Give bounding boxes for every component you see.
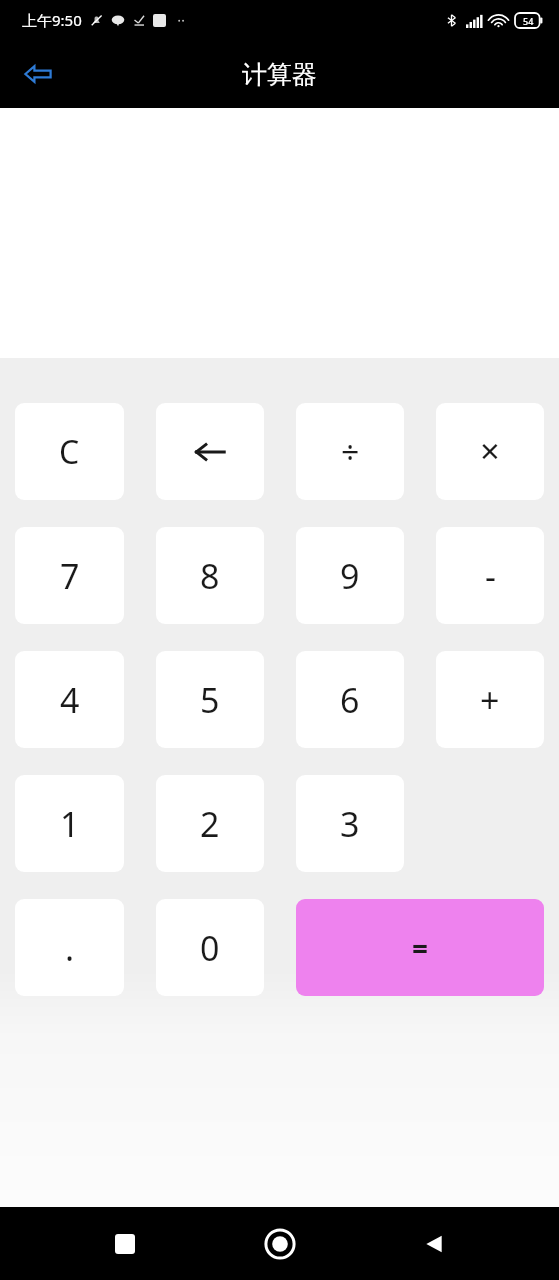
- staticText: ÷: [341, 430, 360, 474]
- button[interactable]: Recents: [95, 1214, 155, 1274]
- button[interactable]: 8: [156, 527, 264, 624]
- button[interactable]: Backspace: [156, 403, 264, 500]
- button[interactable]: 3: [296, 775, 404, 872]
- staticText: 0: [200, 925, 220, 971]
- button[interactable]: C: [15, 403, 124, 500]
- button[interactable]: 5: [156, 651, 264, 748]
- button[interactable]: .: [15, 899, 124, 996]
- button[interactable]: 9: [296, 527, 404, 624]
- button[interactable]: =: [296, 899, 544, 996]
- staticText: 5: [200, 677, 220, 723]
- staticText: 计算器: [242, 59, 317, 90]
- button[interactable]: Back: [404, 1214, 464, 1274]
- staticText: 6: [340, 677, 360, 723]
- button[interactable]: ✕: [436, 403, 544, 500]
- staticText: 54: [523, 15, 534, 27]
- staticText: C: [59, 430, 80, 474]
- staticText: 1: [60, 801, 80, 847]
- button[interactable]: 0: [156, 899, 264, 996]
- button[interactable]: ÷: [296, 403, 404, 500]
- staticText: 2: [200, 801, 220, 847]
- staticText: =: [412, 929, 429, 967]
- staticText: 上午9:50: [22, 10, 82, 30]
- staticText: 8: [200, 553, 220, 599]
- staticText: 9: [340, 553, 360, 599]
- staticText: 3: [340, 801, 360, 847]
- staticText: ✕: [479, 437, 501, 467]
- button[interactable]: Home: [250, 1214, 310, 1274]
- button[interactable]: 7: [15, 527, 124, 624]
- button[interactable]: 1: [15, 775, 124, 872]
- staticText: 4: [60, 677, 80, 723]
- staticText: .: [65, 925, 75, 971]
- button[interactable]: 4: [15, 651, 124, 748]
- button[interactable]: +: [436, 651, 544, 748]
- button[interactable]: 2: [156, 775, 264, 872]
- staticText: 7: [60, 553, 80, 599]
- staticText: +: [480, 677, 500, 723]
- button[interactable]: -: [436, 527, 544, 624]
- staticText: -: [485, 553, 496, 599]
- button[interactable]: 6: [296, 651, 404, 748]
- button[interactable]: Back: [12, 48, 64, 100]
